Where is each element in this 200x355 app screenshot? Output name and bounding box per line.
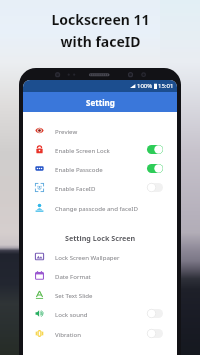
button[interactable]: Toggle on bbox=[147, 164, 163, 173]
button[interactable]: Toggle on bbox=[147, 145, 163, 154]
button[interactable]: Set Text Slide bbox=[23, 285, 177, 304]
staticText: Vibration bbox=[55, 330, 147, 338]
button[interactable]: Change passcode and faceID bbox=[23, 198, 177, 217]
staticText: Enable Passcode bbox=[55, 165, 147, 173]
button[interactable]: Enable FaceID bbox=[23, 178, 177, 197]
staticText: Lockscreen 11 bbox=[51, 10, 150, 29]
button[interactable]: Preview bbox=[23, 121, 177, 140]
staticText: Setting Lock Screen bbox=[65, 233, 136, 243]
button[interactable]: Vibration bbox=[23, 324, 177, 343]
staticText: Lock sound bbox=[55, 310, 147, 318]
staticText: Set Text Slide bbox=[55, 291, 163, 299]
staticText: 100% bbox=[137, 82, 153, 90]
staticText: Change passcode and faceID bbox=[55, 204, 163, 212]
staticText: Enable FaceID bbox=[55, 184, 147, 192]
staticText: Enable Screen Lock bbox=[55, 146, 147, 154]
button[interactable]: Lock sound bbox=[23, 304, 177, 323]
button[interactable]: Toggle off bbox=[147, 183, 163, 192]
button[interactable]: Date Format bbox=[23, 266, 177, 285]
button[interactable]: Enable Screen Lock bbox=[23, 140, 177, 159]
button[interactable]: Enable Passcode bbox=[23, 159, 177, 178]
staticText: Setting bbox=[86, 97, 115, 108]
staticText: with faceID bbox=[60, 32, 141, 51]
staticText: 15:01 bbox=[158, 82, 174, 90]
button[interactable]: Toggle off bbox=[147, 309, 163, 318]
staticText: Date Format bbox=[55, 272, 163, 280]
staticText: Lock Screen Wallpaper bbox=[55, 253, 163, 261]
button[interactable]: Lock Screen Wallpaper bbox=[23, 247, 177, 266]
staticText: Preview bbox=[55, 127, 163, 135]
button[interactable]: Toggle off bbox=[147, 329, 163, 338]
